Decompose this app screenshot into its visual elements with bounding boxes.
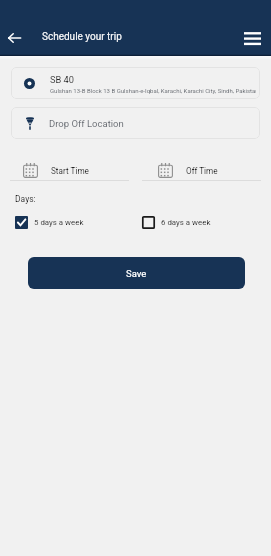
staticText: Off Time [186,166,218,176]
button[interactable]: Back [0,24,28,52]
button[interactable]: 6 days a week [142,216,211,229]
staticText: 6 days a week [161,218,211,227]
staticText: 5 days a week [34,218,84,227]
staticText: Schedule your trip [42,31,122,43]
button[interactable]: Start Time [10,163,129,181]
staticText: Drop Off Location [49,118,124,129]
button[interactable]: Drop Off Location [11,107,260,139]
button[interactable]: Save [28,257,245,289]
staticText: Gulshan 13-B Block 13 B Gulshan-e-Iqbal,… [50,87,256,94]
staticText: Save [126,268,147,279]
button[interactable]: Off Time [142,163,261,181]
staticText: Days: [15,194,36,204]
staticText: Start Time [51,166,89,176]
button[interactable]: Menu [237,23,267,53]
staticText: SB 40 [50,74,75,85]
button[interactable]: 5 days a week [15,216,84,229]
button[interactable]: SB 40 [11,67,260,99]
